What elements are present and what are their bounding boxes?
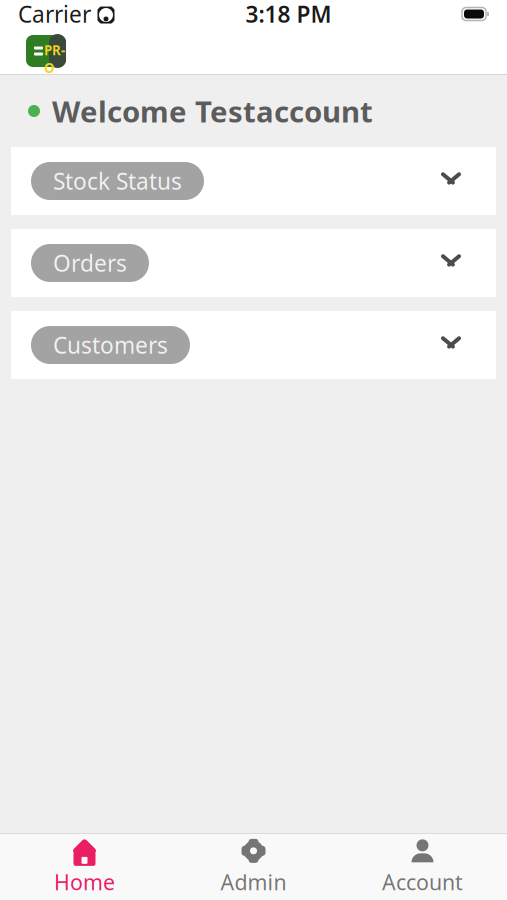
button[interactable]: Stock Status bbox=[11, 147, 496, 215]
staticText: Account bbox=[382, 868, 463, 896]
staticText: Admin bbox=[220, 868, 286, 896]
button[interactable]: Admin bbox=[169, 834, 338, 900]
button[interactable]: Orders bbox=[11, 229, 496, 297]
staticText: Home bbox=[54, 868, 115, 896]
button[interactable]: Account bbox=[338, 834, 507, 900]
button[interactable]: Customers bbox=[11, 311, 496, 379]
staticText: Carrier bbox=[18, 0, 91, 29]
staticText: Stock Status bbox=[53, 166, 182, 196]
staticText: Welcome Testaccount bbox=[52, 91, 373, 130]
staticText: Customers bbox=[53, 330, 168, 360]
button[interactable]: Home logo bbox=[22, 31, 70, 71]
button[interactable]: Home bbox=[0, 834, 169, 900]
staticText: 3:18 PM bbox=[245, 0, 331, 29]
staticText: Orders bbox=[53, 248, 127, 278]
staticText: PRO bbox=[44, 41, 65, 77]
